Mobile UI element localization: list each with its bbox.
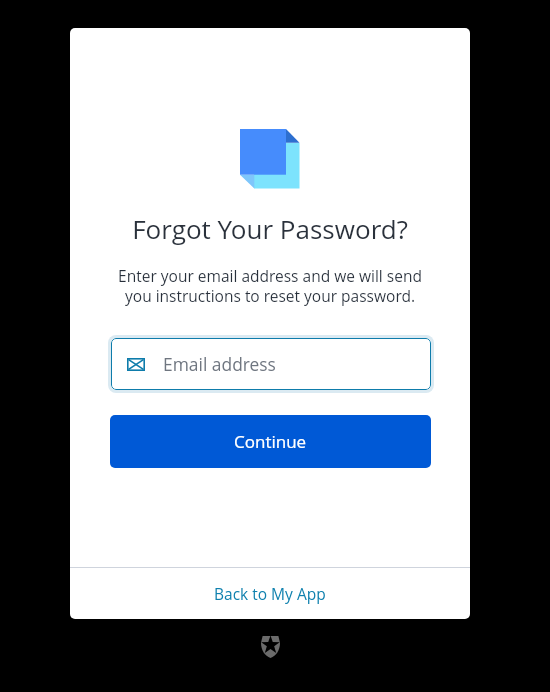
button[interactable]: Email address	[111, 338, 431, 390]
staticText: Enter your email address and we will sen…	[118, 265, 422, 307]
staticText: Forgot Your Password?	[132, 211, 408, 246]
other: Auth0	[261, 636, 280, 658]
staticText: Continue	[234, 430, 307, 453]
button[interactable]: Back to My App	[70, 568, 470, 619]
button[interactable]: Continue	[110, 415, 431, 468]
staticText: Back to My App	[214, 583, 326, 604]
staticText: Email address	[163, 352, 276, 376]
